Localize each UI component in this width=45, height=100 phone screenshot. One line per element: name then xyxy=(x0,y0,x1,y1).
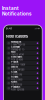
staticText: Photos xyxy=(11,60,18,63)
staticText: 3 mentions xyxy=(11,73,22,76)
button[interactable]: Messages xyxy=(6,41,39,45)
button[interactable]: Mail xyxy=(6,51,39,55)
button[interactable]: Reminders xyxy=(6,56,39,60)
button[interactable]: Photos xyxy=(6,61,39,65)
staticText: Mail xyxy=(11,50,16,53)
staticText: Calendar xyxy=(11,45,20,48)
staticText: New episode xyxy=(11,88,24,91)
staticText: Pick up keys xyxy=(11,58,23,61)
staticText: Card charged xyxy=(11,68,24,71)
staticText: Top stories xyxy=(11,83,22,86)
staticText: Standup at 10 xyxy=(11,48,24,51)
button[interactable]: Fitness xyxy=(6,76,39,80)
button[interactable]: Slack xyxy=(6,71,39,75)
staticText: Invoice #1041 xyxy=(11,53,24,56)
staticText: Memory ready xyxy=(11,63,25,66)
button[interactable]: Podcasts xyxy=(6,86,39,90)
staticText: Slack xyxy=(11,70,17,73)
staticText: Instant xyxy=(2,5,19,11)
staticText: Wallet xyxy=(11,65,18,68)
staticText: Notifications xyxy=(6,34,28,39)
staticText: Reminders xyxy=(11,55,22,58)
staticText: Ring closed xyxy=(11,78,22,81)
button[interactable]: Wallet xyxy=(6,66,39,70)
button[interactable]: Calendar xyxy=(6,46,39,50)
staticText: Messages xyxy=(11,40,21,43)
button[interactable]: News xyxy=(6,81,39,85)
staticText: News xyxy=(11,80,17,83)
staticText: 2 new replies xyxy=(11,43,25,46)
staticText: 9:41 xyxy=(6,27,12,30)
staticText: Notifications xyxy=(2,11,32,17)
staticText: Fitness xyxy=(11,75,18,78)
staticText: Podcasts xyxy=(11,85,20,88)
